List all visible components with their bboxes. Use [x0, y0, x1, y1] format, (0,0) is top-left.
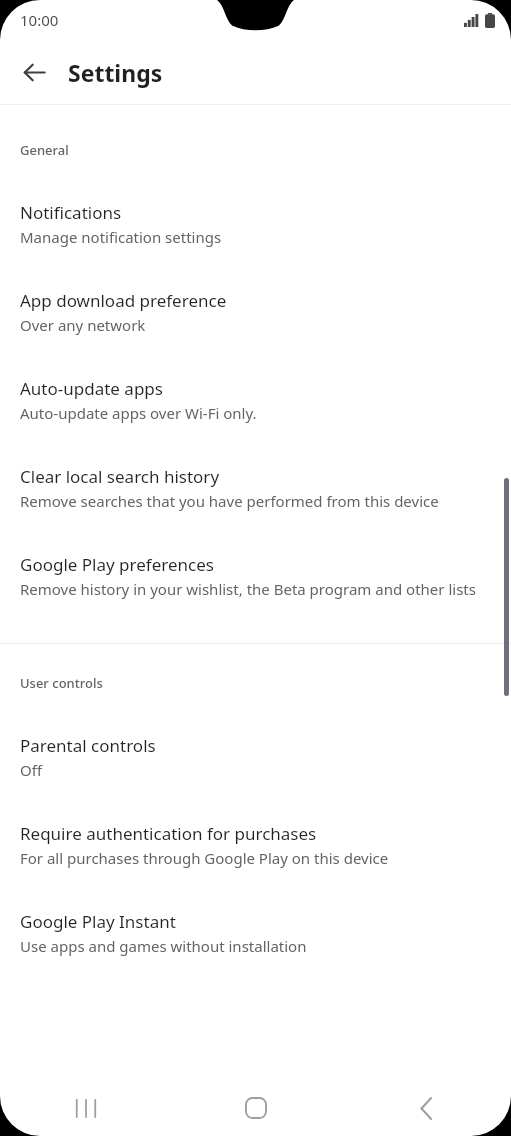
staticText: Parental controls	[20, 734, 156, 757]
staticText: Settings	[68, 57, 163, 88]
staticText: For all purchases through Google Play on…	[20, 848, 389, 868]
staticText: User controls	[20, 674, 103, 692]
staticText: Require authentication for purchases	[20, 822, 317, 845]
button[interactable]: Clear local search history	[0, 465, 511, 511]
staticText: Off	[20, 760, 43, 780]
staticText: Manage notification settings	[20, 227, 222, 247]
button[interactable]: Require authentication for purchases	[0, 822, 511, 868]
button[interactable]: Recent apps	[0, 1080, 171, 1136]
button[interactable]: Back	[12, 50, 56, 94]
staticText: App download preference	[20, 289, 227, 312]
staticText: Clear local search history	[20, 465, 220, 488]
staticText: Notifications	[20, 201, 122, 224]
staticText: Auto-update apps	[20, 377, 163, 400]
button[interactable]: Google Play Instant	[0, 910, 511, 956]
button[interactable]: Back	[341, 1080, 511, 1136]
staticText: Google Play Instant	[20, 910, 176, 933]
staticText: Remove history in your wishlist, the Bet…	[20, 579, 476, 599]
button[interactable]: Notifications	[0, 201, 511, 247]
button[interactable]: Google Play preferences	[0, 553, 511, 599]
button[interactable]: Parental controls	[0, 734, 511, 780]
staticText: Use apps and games without installation	[20, 936, 307, 956]
staticText: Google Play preferences	[20, 553, 214, 576]
button[interactable]: Auto-update apps	[0, 377, 511, 423]
staticText: 10:00	[20, 10, 59, 30]
staticText: Remove searches that you have performed …	[20, 491, 439, 511]
staticText: Auto-update apps over Wi-Fi only.	[20, 403, 257, 423]
staticText: General	[20, 141, 69, 159]
button[interactable]: Home	[171, 1080, 341, 1136]
staticText: Over any network	[20, 315, 146, 335]
button[interactable]: App download preference	[0, 289, 511, 335]
